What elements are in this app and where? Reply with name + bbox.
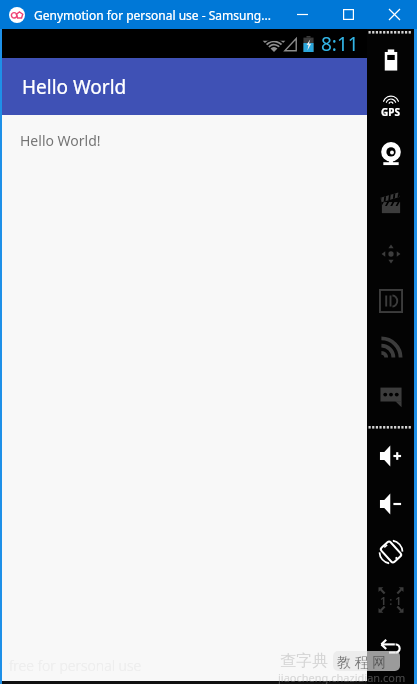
staticText: free for personal use <box>9 656 142 675</box>
button[interactable]: Back <box>367 624 414 672</box>
button[interactable]: Battery <box>367 36 414 84</box>
staticText: 教 程 网 <box>337 652 387 671</box>
staticText: Hello World <box>22 74 127 100</box>
button[interactable]: Camera <box>367 131 414 179</box>
button[interactable]: Maximize <box>325 0 371 29</box>
staticText: jiaocheng.chazidian.com <box>278 670 406 684</box>
button[interactable]: Network <box>367 324 414 372</box>
button[interactable]: Identifiers <box>367 277 414 325</box>
button[interactable]: Zoom 1 to 1 <box>367 576 414 624</box>
button[interactable]: Accelerometer <box>367 230 414 278</box>
staticText: 查字典 <box>280 651 328 671</box>
button[interactable]: Close <box>371 0 417 29</box>
staticText: Hello World! <box>20 131 101 150</box>
button[interactable]: Volume down <box>367 480 414 528</box>
staticText: GPS <box>381 105 400 119</box>
button[interactable]: Rotate <box>367 528 414 576</box>
button[interactable]: GPS <box>367 83 414 131</box>
staticText: 8:11 <box>321 31 359 57</box>
button[interactable]: Volume up <box>367 432 414 480</box>
staticText: Genymotion for personal use - Samsung... <box>34 7 271 23</box>
button[interactable]: SMS <box>367 372 414 420</box>
button[interactable]: Screen record <box>367 180 414 228</box>
staticText: 1 : 1 <box>380 593 402 608</box>
button[interactable]: Minimize <box>279 0 325 29</box>
